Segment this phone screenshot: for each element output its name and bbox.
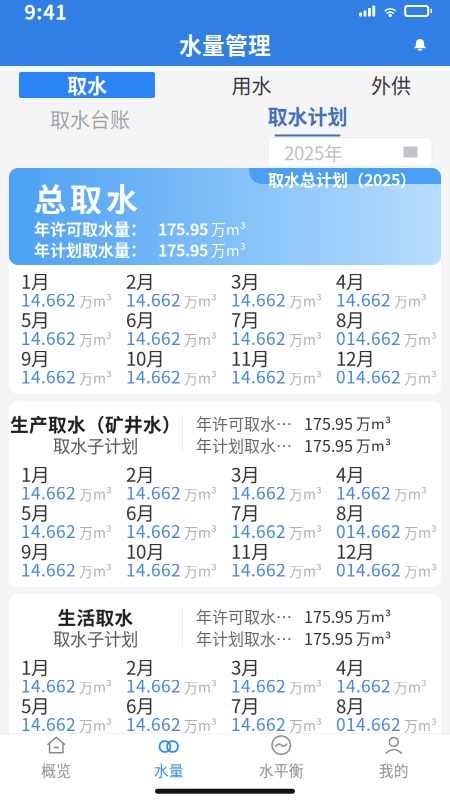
staticText: 5月 [21, 691, 50, 718]
staticText: 取水 [67, 70, 107, 99]
staticText: 万m³ [184, 560, 217, 581]
staticText: 14.662 [21, 518, 76, 543]
staticText: 14.662 [231, 286, 286, 312]
staticText: 175.95 [158, 217, 208, 240]
staticText: 万m³ [404, 560, 437, 581]
staticText: 2月 [126, 653, 155, 680]
staticText: 6月 [126, 691, 155, 718]
staticText: 14.662 [231, 518, 286, 543]
staticText: 万m³ [289, 290, 322, 311]
staticText: 14.662 [231, 749, 286, 775]
staticText: 14.662 [21, 556, 76, 582]
staticText: 2月 [126, 460, 155, 487]
staticText: 取水总计划（2025） [268, 167, 416, 191]
button[interactable]: 用水 [208, 72, 294, 98]
staticText: 1月 [21, 460, 50, 487]
staticText: 总取水 [34, 174, 138, 221]
staticText: 175.95 [304, 604, 353, 628]
button[interactable]: 水平衡 [225, 734, 337, 781]
staticText: 万m³ [184, 483, 217, 504]
staticText: 万m³ [394, 676, 427, 697]
staticText: 14.662 [126, 749, 181, 775]
staticText: 14.662 [231, 672, 286, 698]
staticText: 9月 [21, 537, 50, 564]
staticText: 014.662 [336, 556, 401, 582]
staticText: 175.95 [158, 238, 208, 261]
staticText: 取水计划 [267, 101, 347, 130]
button[interactable]: 水量 [112, 734, 225, 781]
staticText: 14.662 [21, 325, 76, 350]
staticText: 万m³ [79, 560, 112, 581]
staticText: 万m³ [208, 218, 246, 239]
staticText: 万m³ [184, 522, 217, 542]
staticText: 7月 [231, 305, 260, 332]
staticText: 7月 [231, 691, 260, 718]
staticText: 6月 [126, 498, 155, 525]
button[interactable]: 外供 [348, 72, 434, 98]
button[interactable]: 2025年 [268, 137, 432, 166]
staticText: 概览 [41, 759, 71, 780]
staticText: 014.662 [336, 325, 401, 350]
button[interactable]: 取水计划 [232, 104, 382, 134]
staticText: 万m³ [79, 676, 112, 697]
staticText: 万m³ [289, 367, 322, 388]
staticText: 14.662 [231, 363, 286, 389]
staticText: 14.662 [21, 286, 76, 312]
staticText: 水量 [154, 759, 184, 780]
staticText: 12月 [336, 730, 375, 757]
staticText: 14.662 [231, 556, 286, 582]
staticText: 万m³ [184, 290, 217, 311]
staticText: 014.662 [336, 711, 401, 736]
staticText: 2025年 [284, 138, 343, 165]
staticText: 14.662 [126, 556, 181, 582]
staticText: 万m³ [404, 715, 437, 735]
staticText: 14.662 [21, 749, 76, 775]
staticText: 3月 [231, 653, 260, 680]
staticText: 万m³ [394, 483, 427, 504]
staticText: 14.662 [126, 325, 181, 350]
button[interactable]: 我的 [337, 734, 450, 781]
button[interactable]: 取水 [19, 72, 155, 98]
staticText: 年许可取水量： [196, 604, 296, 628]
staticText: 6月 [126, 305, 155, 332]
staticText: 万m³ [79, 367, 112, 388]
staticText: 年计划取水量： [34, 238, 146, 261]
button[interactable]: 取水台账 [15, 104, 165, 134]
button[interactable]: 概览 [0, 734, 112, 781]
staticText: 14.662 [21, 363, 76, 389]
staticText: 7月 [231, 498, 260, 525]
staticText: 8月 [336, 305, 365, 332]
staticText: 12月 [336, 537, 375, 564]
staticText: 万m³ [289, 715, 322, 735]
staticText: 11月 [231, 730, 270, 757]
staticText: 万m³ [79, 715, 112, 735]
staticText: 3月 [231, 460, 260, 487]
staticText: 12月 [336, 344, 375, 371]
staticText: 水平衡 [259, 759, 304, 780]
staticText: 14.662 [21, 672, 76, 698]
staticText: 10月 [126, 730, 165, 757]
staticText: 万m³ [79, 329, 112, 349]
staticText: 2月 [126, 267, 155, 294]
staticText: 万m³ [404, 329, 437, 349]
staticText: 10月 [126, 344, 165, 371]
staticText: 年许可取水量： [34, 217, 146, 240]
staticText: 生活取水 [57, 603, 133, 630]
staticText: 14.662 [126, 479, 181, 505]
staticText: 万m³ [353, 412, 391, 434]
staticText: 取水子计划 [53, 432, 138, 458]
staticText: 14.662 [21, 479, 76, 505]
staticText: 万m³ [394, 290, 427, 311]
staticText: 14.662 [336, 479, 391, 505]
staticText: 14.662 [231, 711, 286, 736]
staticText: 14.662 [126, 672, 181, 698]
button[interactable]: 通知 [402, 26, 438, 62]
staticText: 万m³ [184, 367, 217, 388]
staticText: 014.662 [336, 363, 401, 389]
staticText: 14.662 [231, 325, 286, 350]
staticText: 万m³ [79, 522, 112, 542]
staticText: 万m³ [184, 329, 217, 349]
staticText: 外供 [371, 70, 411, 99]
staticText: 10月 [126, 537, 165, 564]
